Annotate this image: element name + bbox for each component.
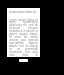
staticText: Lorem ipsum dolor sit amet, consectetur … <box>9 18 38 57</box>
button[interactable]: Accept <box>19 59 28 62</box>
staticText: Lorem ipsum dolor sit amet consect <box>9 10 38 14</box>
